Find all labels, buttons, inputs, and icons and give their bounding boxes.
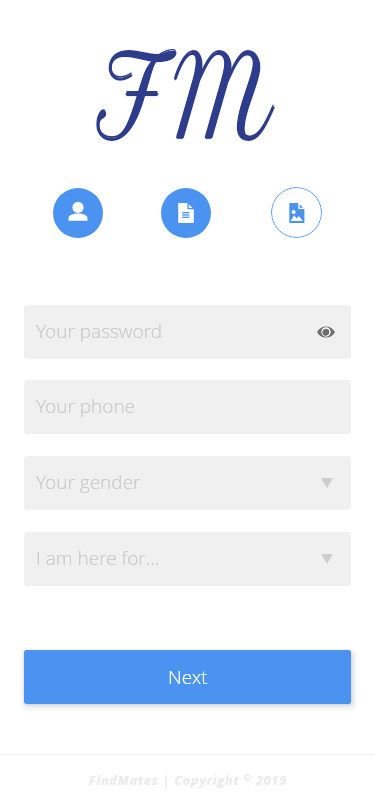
staticText: FM bbox=[96, 30, 272, 166]
button[interactable]: I am here for... bbox=[24, 532, 351, 586]
staticText: Next bbox=[168, 664, 208, 690]
staticText: Your password bbox=[36, 318, 163, 344]
staticText: Your phone bbox=[36, 393, 136, 419]
staticText: FM bbox=[97, 31, 273, 167]
button[interactable]: Your phone bbox=[24, 380, 351, 434]
button[interactable]: Next bbox=[24, 650, 351, 704]
staticText: FindMates | Copyright © 2019 bbox=[89, 771, 287, 789]
button[interactable]: Photos step bbox=[271, 187, 322, 238]
staticText: Your gender bbox=[36, 469, 141, 495]
staticText: FM bbox=[97, 29, 273, 165]
staticText: FM bbox=[98, 30, 274, 166]
staticText: FM bbox=[97, 30, 273, 166]
button[interactable]: Details step bbox=[161, 188, 211, 238]
button[interactable]: Profile step bbox=[53, 188, 103, 238]
button[interactable]: Your password bbox=[24, 305, 351, 359]
staticText: I am here for... bbox=[36, 545, 160, 571]
button[interactable]: Your gender bbox=[24, 456, 351, 510]
